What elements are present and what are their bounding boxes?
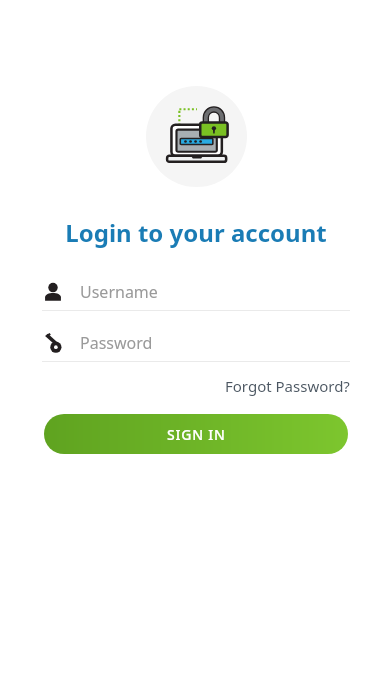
staticText: Password bbox=[80, 332, 153, 354]
staticText: Username bbox=[80, 281, 158, 303]
button[interactable]: Forgot Password? bbox=[225, 372, 350, 400]
staticText: Login to your account bbox=[65, 216, 327, 249]
button[interactable]: Username bbox=[42, 273, 350, 310]
staticText: SIGN IN bbox=[167, 425, 226, 444]
other: Username bbox=[42, 281, 64, 303]
button[interactable]: SIGN IN bbox=[44, 414, 348, 454]
other: Password bbox=[42, 332, 64, 354]
staticText: Forgot Password? bbox=[225, 376, 350, 396]
button[interactable]: Password bbox=[42, 324, 350, 361]
